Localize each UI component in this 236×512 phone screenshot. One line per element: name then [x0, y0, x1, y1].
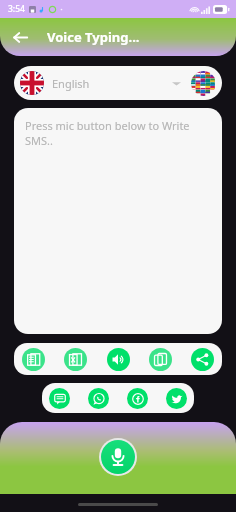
button[interactable]: English — [14, 66, 222, 100]
button[interactable]: Copy text — [149, 348, 172, 371]
button[interactable]: Share text — [191, 348, 214, 371]
staticText: Voice Typing... — [47, 28, 140, 46]
staticText: Press mic button below to Write SMS.. — [25, 118, 211, 148]
button[interactable]: Choose language — [191, 71, 216, 96]
button[interactable]: Save as document — [22, 348, 45, 371]
button[interactable]: Share on Facebook — [127, 388, 148, 409]
button[interactable]: Export to Excel — [64, 348, 87, 371]
button[interactable]: Start voice recording — [101, 440, 135, 474]
staticText: English — [52, 76, 90, 91]
button[interactable]: Share on Twitter — [166, 388, 187, 409]
button[interactable]: Speak text — [107, 348, 130, 371]
button[interactable]: Press mic button below to Write SMS.. — [14, 108, 222, 334]
staticText: 3:54 — [8, 3, 25, 15]
button[interactable]: Back — [7, 24, 33, 50]
button[interactable]: Send on WhatsApp — [88, 388, 109, 409]
button[interactable]: Send SMS — [49, 388, 70, 409]
